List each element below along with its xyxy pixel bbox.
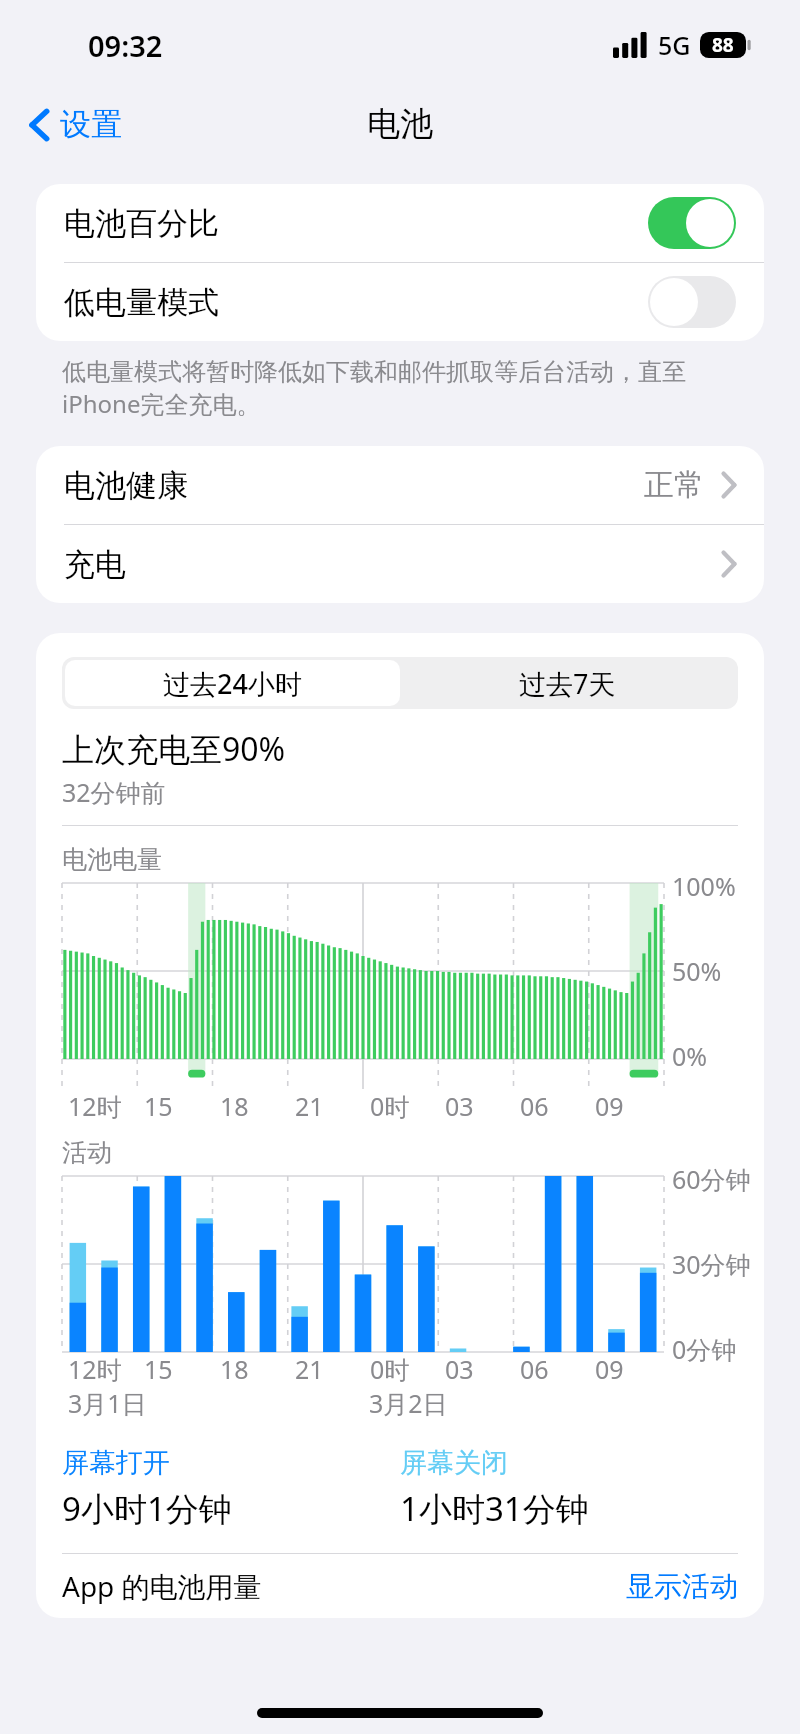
button[interactable]: 低电量模式 — [648, 276, 736, 328]
staticText: 0分钟 — [672, 1332, 737, 1366]
staticText: 60分钟 — [672, 1162, 751, 1196]
staticText: 电池百分比 — [64, 204, 219, 243]
staticText: 3月2日 — [369, 1386, 448, 1420]
button[interactable]: 充电 — [36, 525, 764, 603]
staticText: 32分钟前 — [62, 775, 166, 809]
staticText: 18 — [220, 1089, 249, 1123]
staticText: 03 — [445, 1352, 474, 1386]
staticText: 低电量模式将暂时降低如下载和邮件抓取等后台活动，直至 iPhone完全充电。 — [62, 357, 686, 420]
staticText: 50% — [672, 954, 722, 988]
button[interactable]: 电池百分比 — [36, 184, 764, 262]
staticText: 15 — [144, 1352, 173, 1386]
staticText: 03 — [445, 1089, 474, 1123]
staticText: 电池电量 — [62, 844, 162, 875]
staticText: 0时 — [370, 1089, 410, 1123]
staticText: 电池 — [367, 103, 433, 145]
staticText: 3月1日 — [68, 1386, 147, 1420]
staticText: 12时 — [68, 1352, 122, 1386]
staticText: 09 — [595, 1089, 624, 1123]
staticText: 88 — [712, 32, 734, 58]
staticText: 21 — [295, 1352, 324, 1386]
staticText: 5G — [658, 28, 691, 62]
staticText: 低电量模式 — [64, 283, 219, 322]
staticText: 21 — [295, 1089, 324, 1123]
button[interactable]: 显示活动 — [626, 1569, 738, 1604]
button[interactable]: 电池健康 — [36, 446, 764, 524]
staticText: 0时 — [370, 1352, 410, 1386]
button[interactable]: 过去24小时 — [65, 660, 400, 706]
staticText: 过去24小时 — [163, 665, 302, 702]
staticText: 9小时1分钟 — [62, 1486, 232, 1531]
staticText: 06 — [520, 1089, 549, 1123]
staticText: 0% — [672, 1039, 708, 1073]
staticText: 电池健康 — [64, 466, 188, 505]
staticText: 15 — [144, 1089, 173, 1123]
staticText: 活动 — [62, 1137, 112, 1168]
button[interactable]: 设置 — [20, 99, 130, 150]
staticText: 充电 — [64, 545, 126, 584]
staticText: 屏幕关闭 — [400, 1446, 508, 1480]
button[interactable]: 低电量模式 — [36, 263, 764, 341]
staticText: App 的电池用量 — [62, 1567, 262, 1605]
staticText: 09 — [595, 1352, 624, 1386]
staticText: 18 — [220, 1352, 249, 1386]
staticText: 显示活动 — [626, 1569, 738, 1604]
staticText: 上次充电至90% — [62, 727, 286, 771]
staticText: 06 — [520, 1352, 549, 1386]
button[interactable]: 电池百分比 — [648, 197, 736, 249]
staticText: 设置 — [60, 105, 122, 144]
staticText: 30分钟 — [672, 1247, 751, 1281]
staticText: 屏幕打开 — [62, 1446, 170, 1480]
staticText: 过去7天 — [519, 665, 616, 702]
staticText: 1小时31分钟 — [400, 1486, 589, 1531]
staticText: 12时 — [68, 1089, 122, 1123]
staticText: 100% — [672, 869, 736, 903]
staticText: 09:32 — [88, 26, 163, 65]
button[interactable]: 过去7天 — [400, 660, 735, 706]
staticText: 正常 — [644, 466, 704, 504]
